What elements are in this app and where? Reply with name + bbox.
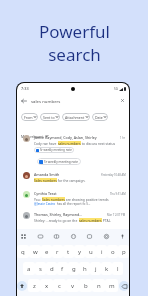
button[interactable]: p bbox=[118, 245, 129, 258]
staticText: From bbox=[24, 115, 33, 120]
button[interactable]: h bbox=[79, 262, 90, 275]
button[interactable]: Sticker bbox=[53, 233, 60, 240]
staticText: Shirley: ...ready to go on the bbox=[34, 218, 79, 222]
button[interactable]: Sent to bbox=[40, 113, 60, 121]
staticText: v bbox=[71, 282, 75, 290]
staticText: 5G bbox=[114, 87, 118, 91]
button[interactable]: w bbox=[29, 245, 41, 258]
staticText: Sales numbers bbox=[34, 178, 57, 182]
staticText: to discuss next status bbox=[81, 141, 116, 145]
staticText: Yesterday 10:48 AM bbox=[101, 173, 126, 177]
staticText: g bbox=[72, 265, 76, 273]
staticText: h bbox=[83, 265, 87, 273]
staticText: c bbox=[58, 282, 61, 290]
button[interactable]: From bbox=[21, 113, 38, 121]
button[interactable]: y bbox=[74, 245, 85, 258]
button[interactable]: Back bbox=[17, 94, 129, 107]
staticText: b bbox=[84, 282, 88, 290]
button[interactable]: x bbox=[40, 279, 53, 292]
staticText: 7:33 bbox=[21, 86, 29, 91]
button[interactable]: g bbox=[68, 262, 79, 275]
staticText: k bbox=[105, 265, 109, 273]
staticText: Powerful bbox=[39, 20, 110, 43]
staticText: are showing positive trends bbox=[65, 197, 109, 201]
staticText: f bbox=[61, 265, 64, 273]
staticText: sales numbers bbox=[79, 218, 102, 222]
button[interactable]: Shift bbox=[17, 281, 27, 291]
staticText: sales numbers bbox=[58, 141, 81, 145]
button[interactable]: t bbox=[63, 245, 74, 258]
button[interactable]: Date bbox=[92, 113, 108, 121]
button[interactable]: s bbox=[35, 262, 46, 275]
staticText: Sent to bbox=[43, 115, 55, 120]
button[interactable]: c bbox=[53, 279, 66, 292]
button[interactable]: n bbox=[92, 279, 105, 292]
button[interactable]: Most relevant bbox=[17, 132, 129, 140]
button[interactable]: o bbox=[107, 245, 118, 258]
button[interactable]: f bbox=[57, 262, 68, 275]
button[interactable]: j bbox=[90, 262, 101, 275]
staticText: Janice Raymond, Cody, Aslan, Shirley bbox=[34, 135, 119, 140]
staticText: PT&L bbox=[102, 218, 111, 222]
button[interactable]: Sr weekly meeting note bbox=[34, 147, 74, 153]
button[interactable]: Settings bbox=[103, 233, 110, 240]
staticText: Sr weekly meeting note bbox=[44, 160, 79, 164]
staticText: s bbox=[39, 265, 42, 273]
staticText: You: bbox=[34, 197, 42, 201]
button[interactable]: a bbox=[23, 262, 35, 275]
staticText: d bbox=[50, 265, 54, 273]
button[interactable]: Voice input bbox=[119, 233, 126, 240]
button[interactable]: b bbox=[79, 279, 92, 292]
staticText: Sales numbers bbox=[42, 197, 65, 201]
button[interactable]: Janice Raymond, Cody, Aslan, Shirley bbox=[17, 135, 129, 153]
button[interactable]: Amanda Smith bbox=[17, 172, 129, 182]
staticText: Thu 9:51 AM bbox=[110, 192, 126, 196]
button[interactable]: Cynthia Tesst bbox=[17, 191, 129, 206]
staticText: m bbox=[109, 282, 115, 290]
staticText: w bbox=[33, 248, 38, 256]
button[interactable]: Clipboard bbox=[20, 233, 27, 240]
button[interactable]: Clear search bbox=[120, 98, 125, 103]
staticText: Thomas, Shirley, Raymond... bbox=[34, 212, 106, 217]
other: Back bbox=[21, 98, 27, 104]
staticText: n bbox=[97, 282, 101, 290]
staticText: Mar 7 2:07 PM bbox=[107, 213, 126, 217]
button[interactable]: r bbox=[52, 245, 63, 258]
button[interactable]: Backspace bbox=[119, 281, 129, 291]
staticText: l bbox=[117, 265, 119, 273]
button[interactable]: z bbox=[28, 279, 40, 292]
staticText: 1 hr bbox=[120, 136, 126, 140]
button[interactable]: GIF bbox=[37, 233, 44, 240]
button[interactable]: q bbox=[17, 245, 29, 258]
button[interactable]: d bbox=[46, 262, 57, 275]
staticText: sales numbers bbox=[31, 98, 61, 104]
button[interactable]: Sr weekly meeting note bbox=[37, 158, 81, 165]
staticText: Amanda Smith bbox=[34, 172, 100, 177]
staticText: j bbox=[95, 265, 97, 273]
staticText: z bbox=[33, 282, 36, 290]
staticText: u bbox=[89, 248, 93, 256]
staticText: Cody: we have bbox=[34, 141, 58, 145]
button[interactable]: l bbox=[112, 262, 123, 275]
button[interactable]: Emoji bbox=[70, 233, 77, 240]
staticText: r bbox=[56, 248, 59, 256]
button[interactable]: Translate bbox=[86, 233, 93, 240]
staticText: Attachment bbox=[65, 115, 85, 120]
button[interactable]: k bbox=[101, 262, 112, 275]
staticText: p bbox=[122, 248, 126, 256]
staticText: q bbox=[21, 248, 25, 256]
staticText: o bbox=[111, 248, 115, 256]
button[interactable]: v bbox=[66, 279, 79, 292]
button[interactable]: e bbox=[41, 245, 52, 258]
button[interactable]: Thomas, Shirley, Raymond... bbox=[17, 212, 129, 222]
staticText: for the campaign. bbox=[57, 178, 86, 182]
staticText: y bbox=[78, 248, 82, 256]
button[interactable]: m bbox=[105, 279, 118, 292]
button[interactable]: Attachment bbox=[62, 113, 90, 121]
staticText: e bbox=[45, 248, 49, 256]
staticText: x bbox=[45, 282, 49, 290]
button[interactable]: i bbox=[96, 245, 107, 258]
staticText: Sr weekly meeting note bbox=[40, 148, 72, 152]
staticText: a bbox=[27, 265, 31, 273]
button[interactable]: u bbox=[85, 245, 96, 258]
